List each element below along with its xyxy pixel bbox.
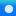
button[interactable]: App icon: [0, 0, 16, 16]
